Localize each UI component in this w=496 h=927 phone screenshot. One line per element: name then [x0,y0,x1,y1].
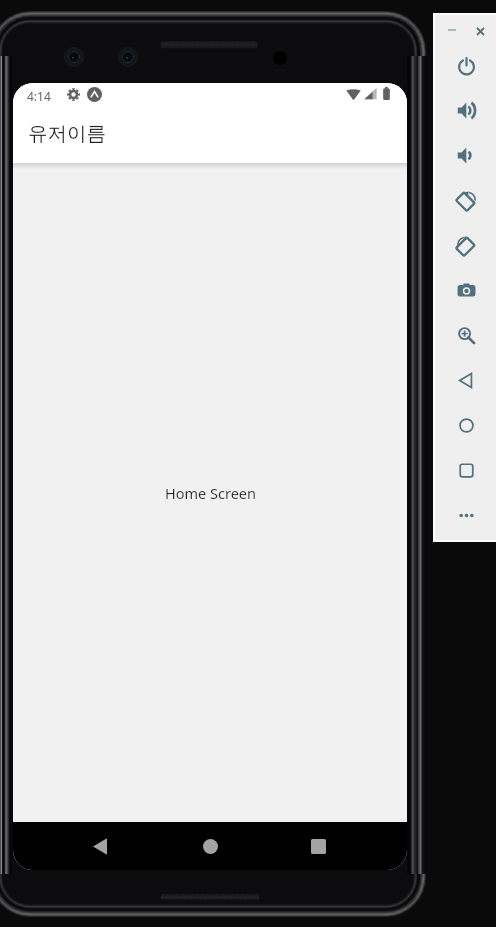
button[interactable]: Recent apps [294,822,342,870]
button[interactable]: Power [435,43,496,88]
button[interactable]: Back [76,822,124,870]
staticText: 유저이름 [28,121,106,146]
button[interactable]: Rotate left [435,178,496,223]
button[interactable]: Minimize [437,16,467,44]
staticText: 4:14 [27,88,51,104]
button[interactable]: Take screenshot [435,268,496,313]
button[interactable]: Volume up [435,88,496,133]
button[interactable]: Home [435,403,496,448]
button[interactable]: Zoom [435,313,496,358]
button[interactable]: Back [435,358,496,403]
button[interactable]: Home [186,822,234,870]
button[interactable]: Volume down [435,133,496,178]
button[interactable]: Close [465,17,495,45]
button[interactable]: Overview [435,448,496,493]
staticText: Home Screen [165,483,256,503]
button[interactable]: More [435,493,496,538]
button[interactable]: Rotate right [435,223,496,268]
